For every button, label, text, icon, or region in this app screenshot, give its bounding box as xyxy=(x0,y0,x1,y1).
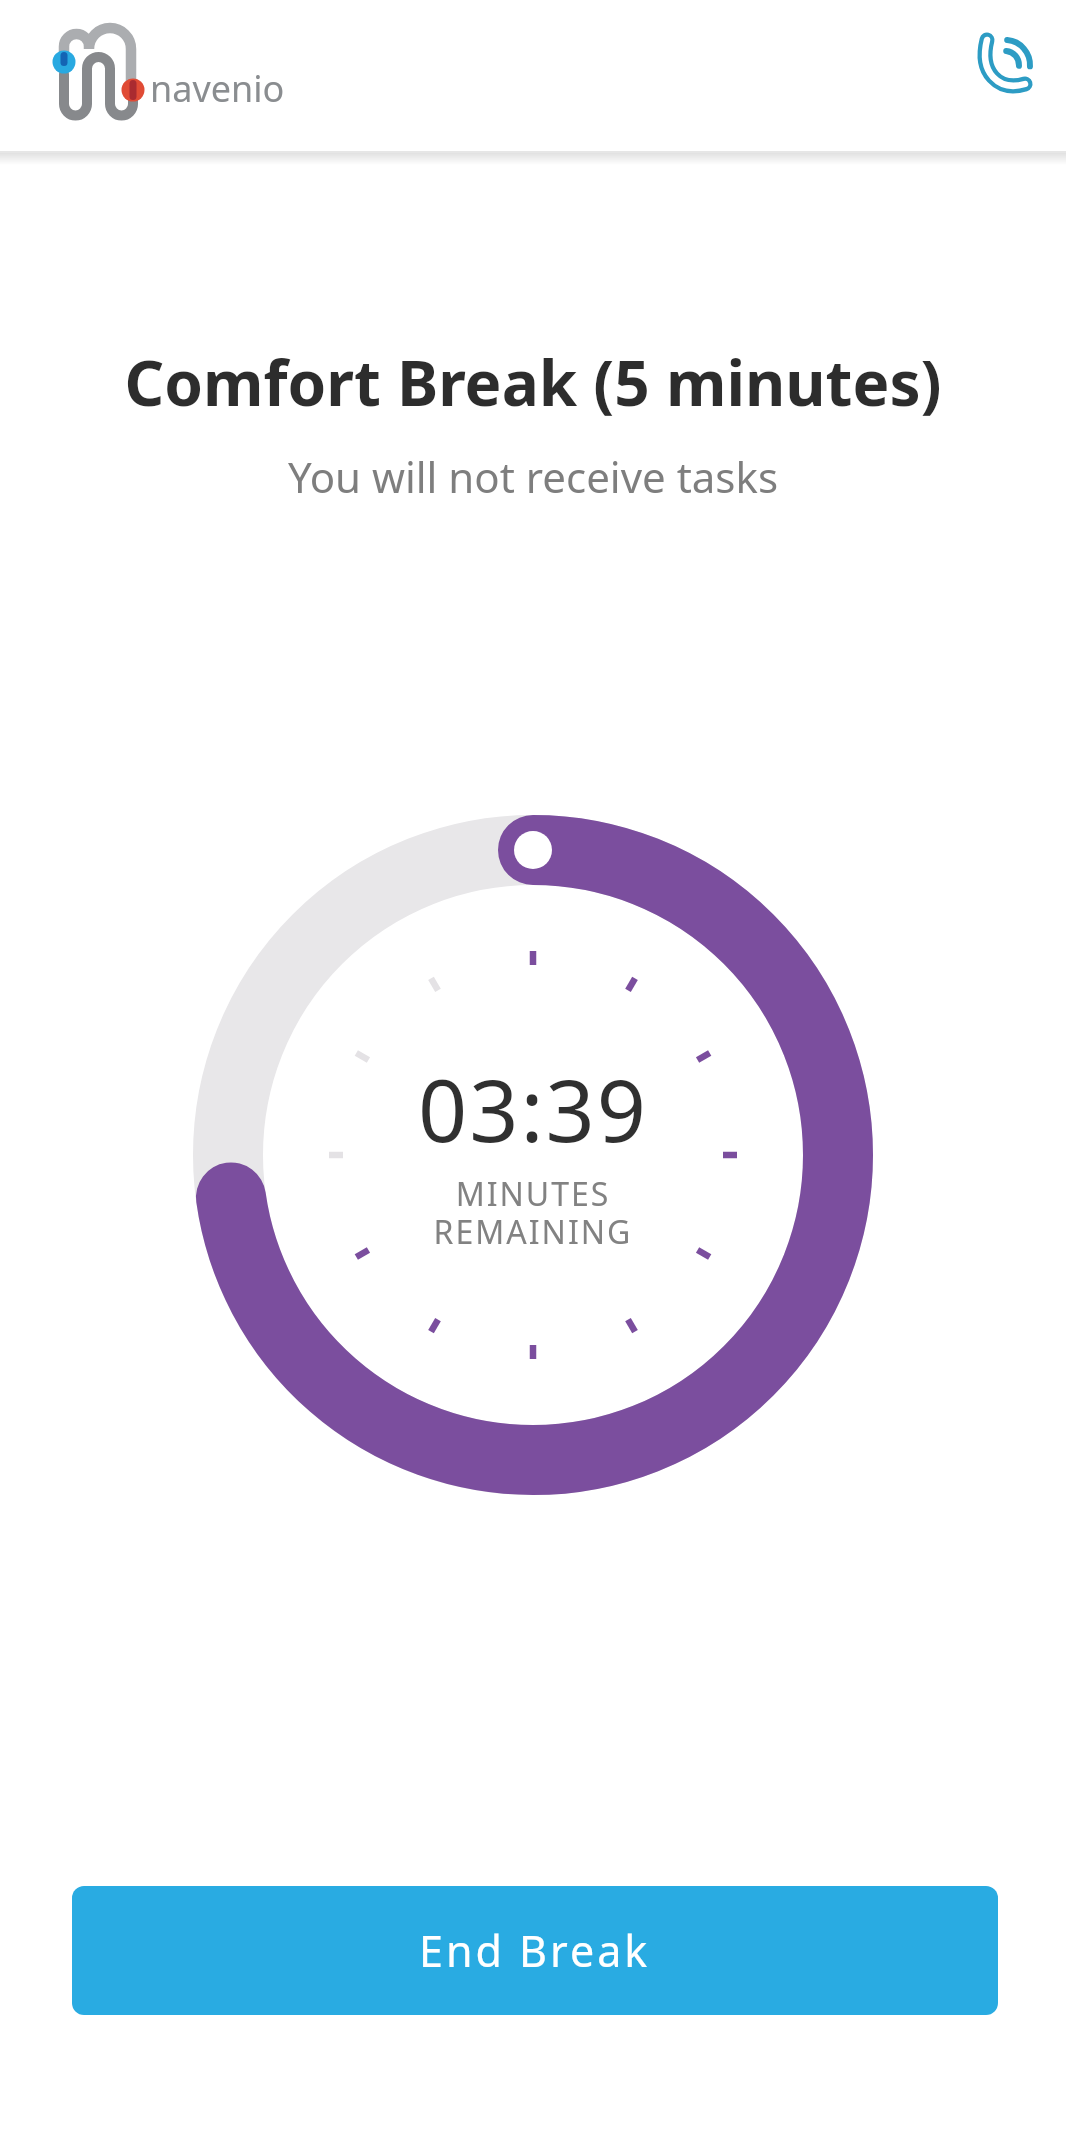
staticText: navenio xyxy=(150,64,285,113)
staticText: 03:39 xyxy=(0,1050,1066,1167)
staticText: MINUTES REMAINING xyxy=(0,1172,1066,1253)
staticText: You will not receive tasks xyxy=(0,448,1066,505)
button[interactable] xyxy=(962,24,1046,108)
button[interactable]: End Break xyxy=(72,1886,998,2015)
staticText: End Break xyxy=(419,1921,651,1980)
staticText: Comfort Break (5 minutes) xyxy=(0,340,1066,424)
